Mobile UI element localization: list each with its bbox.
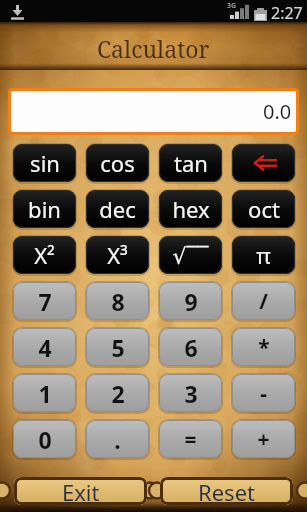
staticText: √‾‾	[172, 240, 209, 270]
button[interactable]: Exit	[14, 477, 147, 505]
staticText: π	[256, 240, 271, 270]
staticText: 4	[38, 332, 52, 363]
button[interactable]	[232, 144, 295, 182]
button[interactable]: 4	[13, 328, 76, 366]
button[interactable]: oct	[232, 190, 295, 228]
staticText: X³	[107, 240, 128, 270]
button[interactable]: Reset	[160, 477, 293, 505]
staticText: 2:27	[271, 2, 303, 24]
staticText: dec	[99, 194, 136, 224]
button[interactable]: +	[232, 420, 295, 458]
staticText: Reset	[198, 477, 255, 505]
button[interactable]: bin	[13, 190, 76, 228]
button[interactable]: 7	[13, 282, 76, 320]
button[interactable]: =	[159, 420, 222, 458]
staticText: Calculator	[97, 33, 210, 64]
button[interactable]: 9	[159, 282, 222, 320]
staticText: 0.0	[263, 98, 292, 125]
staticText: 1	[38, 378, 52, 409]
staticText: =	[184, 425, 197, 454]
button[interactable]: .	[86, 420, 149, 458]
button[interactable]: 1	[13, 374, 76, 412]
staticText: *	[258, 333, 270, 362]
staticText: bin	[28, 194, 61, 224]
staticText: X²	[34, 240, 55, 270]
button[interactable]: X²	[13, 236, 76, 274]
staticText: 9	[184, 286, 198, 317]
button[interactable]: dec	[86, 190, 149, 228]
staticText: 2	[111, 378, 125, 409]
button[interactable]: 8	[86, 282, 149, 320]
button[interactable]: X³	[86, 236, 149, 274]
staticText: 8	[111, 286, 125, 317]
button[interactable]: π	[232, 236, 295, 274]
staticText: sin	[30, 148, 60, 178]
staticText: tan	[174, 148, 208, 178]
staticText: 7	[38, 286, 52, 317]
staticText: +	[257, 425, 270, 454]
button[interactable]: √‾‾	[159, 236, 222, 274]
staticText: .	[114, 424, 121, 455]
button[interactable]: 2	[86, 374, 149, 412]
staticText: hex	[172, 194, 210, 224]
staticText: 3G	[227, 1, 237, 11]
button[interactable]: -	[232, 374, 295, 412]
staticText: cos	[100, 148, 135, 178]
staticText: 6	[184, 332, 198, 363]
button[interactable]: cos	[86, 144, 149, 182]
staticText: Exit	[62, 477, 100, 505]
staticText: oct	[248, 194, 280, 224]
button[interactable]: 6	[159, 328, 222, 366]
button[interactable]: tan	[159, 144, 222, 182]
button[interactable]: hex	[159, 190, 222, 228]
button[interactable]: 3	[159, 374, 222, 412]
staticText: 0	[38, 424, 52, 455]
staticText: /	[259, 287, 268, 316]
button[interactable]: 0	[13, 420, 76, 458]
staticText: 3	[184, 378, 198, 409]
staticText: 5	[111, 332, 125, 363]
button[interactable]: 5	[86, 328, 149, 366]
button[interactable]: /	[232, 282, 295, 320]
staticText: -	[260, 379, 267, 408]
button[interactable]: *	[232, 328, 295, 366]
button[interactable]: sin	[13, 144, 76, 182]
